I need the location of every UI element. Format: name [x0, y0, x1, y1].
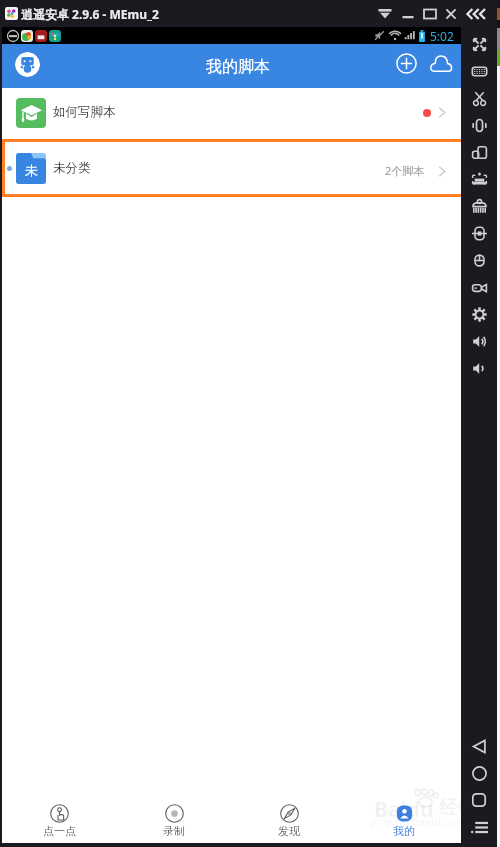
- button[interactable]: More options: [373, 3, 396, 25]
- staticText: 录制: [163, 824, 185, 838]
- button[interactable]: Minimize: [396, 3, 419, 25]
- button[interactable]: Collapse toolbar: [465, 3, 488, 25]
- staticText: 2个脚本: [385, 163, 425, 178]
- button[interactable]: 点一点: [2, 789, 116, 843]
- button[interactable]: Screenshot: [466, 85, 493, 112]
- button[interactable]: Record screen: [466, 274, 493, 301]
- button[interactable]: Clean: [466, 193, 493, 220]
- button[interactable]: Cloud scripts: [427, 50, 454, 77]
- staticText: jingyan.baidu.com: [371, 814, 467, 829]
- button[interactable]: Home: [466, 760, 492, 786]
- button[interactable]: Settings: [466, 301, 493, 328]
- button[interactable]: Multi window: [466, 139, 493, 166]
- button[interactable]: Shake: [466, 112, 493, 139]
- button[interactable]: Volume up: [466, 328, 493, 355]
- button[interactable]: Fullscreen: [466, 31, 493, 58]
- button[interactable]: Back: [466, 733, 492, 759]
- button[interactable]: 我的: [346, 789, 461, 843]
- button[interactable]: Volume down: [466, 355, 493, 382]
- button[interactable]: Maximize: [418, 3, 441, 25]
- staticText: 5:02: [430, 28, 454, 44]
- staticText: Baidu: [374, 795, 434, 824]
- staticText: 如何写脚本: [53, 104, 116, 120]
- staticText: 点一点: [43, 824, 76, 838]
- staticText: 我的脚本: [206, 57, 270, 77]
- staticText: 发现: [278, 824, 300, 838]
- button[interactable]: Recent apps: [466, 787, 492, 813]
- button[interactable]: 发现: [231, 789, 346, 843]
- staticText: 未: [25, 162, 38, 178]
- button[interactable]: Open menu: [15, 52, 40, 77]
- button[interactable]: 如何写脚本: [2, 88, 461, 139]
- button[interactable]: Install APK: [466, 166, 493, 193]
- button[interactable]: More menu: [466, 814, 492, 840]
- staticText: 我的: [393, 824, 415, 838]
- button[interactable]: Storage: [466, 247, 493, 274]
- button[interactable]: Close: [439, 3, 462, 25]
- staticText: 经验: [439, 796, 477, 820]
- staticText: 未分类: [53, 160, 91, 176]
- button[interactable]: Add script: [393, 50, 420, 77]
- button[interactable]: 录制: [116, 789, 231, 843]
- button[interactable]: 未: [5, 142, 461, 194]
- button[interactable]: Shared folder: [466, 220, 493, 247]
- staticText: 逍遥安卓 2.9.6 - MEmu_2: [21, 6, 159, 22]
- button[interactable]: Keyboard: [466, 58, 493, 85]
